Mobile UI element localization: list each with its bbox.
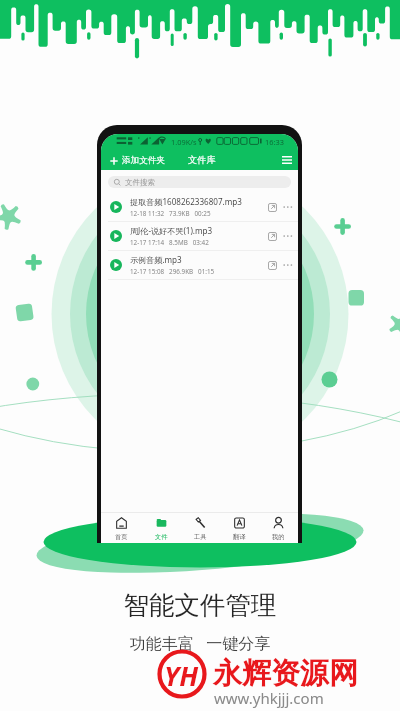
staticText: www.yhkjjj.com bbox=[214, 688, 324, 708]
button[interactable]: 示例音频.mp3 bbox=[101, 251, 298, 280]
staticText: 文件库 bbox=[188, 154, 216, 166]
staticText: 周J伦-说好不哭(1).mp3 bbox=[130, 225, 213, 236]
button[interactable]: 更多 bbox=[283, 202, 293, 212]
staticText: 1.09K/s bbox=[171, 137, 197, 147]
button[interactable]: 文件搜索 bbox=[108, 176, 291, 188]
button[interactable]: 菜单 bbox=[280, 153, 294, 167]
button[interactable]: 工具 bbox=[181, 513, 220, 543]
staticText: YH bbox=[164, 657, 199, 694]
staticText: 12-18 11:32 73.9KB 00:25 bbox=[130, 209, 211, 218]
staticText: 我的 bbox=[272, 533, 285, 541]
staticText: 永辉资源网 bbox=[213, 655, 358, 692]
button[interactable]: 文件 bbox=[141, 513, 181, 543]
staticText: 示例音频.mp3 bbox=[130, 254, 182, 265]
button[interactable]: 周J伦-说好不哭(1).mp3 bbox=[101, 222, 298, 251]
button[interactable]: 分享 bbox=[268, 203, 277, 212]
button[interactable]: 添加文件夹 bbox=[110, 155, 165, 166]
button[interactable]: 分享 bbox=[268, 261, 277, 270]
button[interactable]: 首页 bbox=[101, 513, 141, 543]
staticText: 智能文件管理 bbox=[0, 589, 400, 621]
button[interactable]: 翻译 bbox=[220, 513, 259, 543]
staticText: 提取音频1608262336807.mp3 bbox=[130, 196, 242, 207]
staticText: 文件搜索 bbox=[125, 178, 155, 187]
button[interactable]: 分享 bbox=[268, 232, 277, 241]
button[interactable]: 更多 bbox=[283, 260, 293, 270]
staticText: 首页 bbox=[115, 533, 128, 541]
staticText: 翻译 bbox=[233, 533, 246, 541]
staticText: 文件 bbox=[155, 533, 168, 541]
staticText: 添加文件夹 bbox=[122, 155, 165, 166]
button[interactable]: 我的 bbox=[259, 513, 298, 543]
staticText: 12-17 15:08 296.9KB 01:15 bbox=[130, 267, 215, 276]
staticText: 工具 bbox=[194, 533, 207, 541]
button[interactable]: 提取音频1608262336807.mp3 bbox=[101, 193, 298, 222]
staticText: 功能丰富 一键分享 bbox=[0, 632, 400, 654]
button[interactable]: 更多 bbox=[283, 231, 293, 241]
staticText: 12-17 17:14 8.5MB 03:42 bbox=[130, 238, 209, 247]
staticText: 16:33 bbox=[265, 137, 284, 147]
